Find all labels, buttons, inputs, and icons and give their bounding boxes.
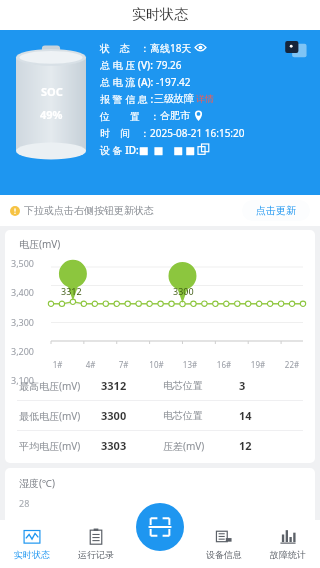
- button[interactable]: 运行记录: [64, 520, 128, 568]
- staticText: ■ ■ ■ ■: [139, 143, 195, 157]
- staticText: 电芯位置: [163, 379, 239, 392]
- staticText: 28: [19, 497, 30, 509]
- button[interactable]: 最高电压(mV): [5, 371, 315, 400]
- staticText: 设 备 ID:: [100, 143, 139, 157]
- staticText: 离线18天: [150, 41, 192, 55]
- staticText: 3,100: [11, 374, 35, 386]
- staticText: 三级故障: [154, 92, 194, 105]
- staticText: 点击更新: [256, 204, 296, 217]
- staticText: 12: [239, 438, 252, 453]
- staticText: 总 电 压 (V):: [100, 58, 156, 72]
- staticText: 压差(mV): [163, 439, 239, 453]
- staticText: 电压(mV): [19, 237, 61, 251]
- staticText: -197.42: [156, 75, 191, 89]
- staticText: 运行记录: [78, 549, 114, 560]
- staticText: 49%: [40, 107, 63, 122]
- staticText: 最低电压(mV): [19, 409, 101, 423]
- staticText: 详情: [196, 93, 214, 104]
- staticText: 10#: [140, 359, 173, 370]
- staticText: 3,200: [11, 345, 35, 357]
- button[interactable]: 平均电压(mV): [5, 431, 315, 460]
- staticText: 22#: [275, 359, 309, 370]
- button[interactable]: 实时状态: [0, 520, 64, 568]
- button[interactable]: Translate: [284, 39, 308, 63]
- staticText: 3300: [101, 408, 163, 423]
- staticText: 平均电压(mV): [19, 439, 101, 453]
- staticText: 3,500: [11, 257, 35, 269]
- staticText: 19#: [241, 359, 275, 370]
- staticText: 3312: [61, 285, 82, 297]
- button[interactable]: 点击更新: [242, 200, 310, 221]
- staticText: 1#: [41, 359, 74, 370]
- staticText: 电芯位置: [163, 409, 239, 422]
- staticText: 湿度(℃): [19, 476, 55, 490]
- button[interactable]: 设备信息: [192, 520, 256, 568]
- staticText: 4#: [74, 359, 107, 370]
- staticText: 实时状态: [14, 549, 50, 560]
- button[interactable]: 最低电压(mV): [5, 401, 315, 430]
- staticText: 报 警 信 息 :: [100, 92, 154, 106]
- staticText: 时 间 ：: [100, 126, 150, 140]
- staticText: SOC: [41, 84, 63, 99]
- staticText: 3,400: [11, 286, 35, 298]
- staticText: 79.26: [156, 58, 182, 72]
- staticText: 3300: [173, 285, 194, 297]
- staticText: 14: [239, 408, 252, 423]
- button[interactable]: 故障统计: [256, 520, 320, 568]
- staticText: 3303: [101, 438, 163, 453]
- staticText: 状 态 ：: [100, 41, 150, 55]
- staticText: 实时状态: [132, 6, 188, 24]
- staticText: 13#: [173, 359, 207, 370]
- staticText: 最高电压(mV): [19, 379, 101, 393]
- staticText: 7#: [107, 359, 140, 370]
- staticText: 总 电 流 (A):: [100, 75, 156, 89]
- staticText: 故障统计: [270, 549, 306, 560]
- staticText: 合肥市: [160, 109, 190, 122]
- staticText: 3,300: [11, 316, 35, 328]
- staticText: 设备信息: [206, 549, 242, 560]
- staticText: 3312: [101, 378, 163, 393]
- staticText: 3: [239, 378, 246, 393]
- staticText: 2025-08-21 16:15:20: [150, 126, 245, 140]
- staticText: 下拉或点击右侧按钮更新状态: [24, 204, 154, 217]
- staticText: 16#: [207, 359, 241, 370]
- staticText: 位 置 ：: [100, 109, 160, 123]
- button[interactable]: Scan: [136, 503, 184, 551]
